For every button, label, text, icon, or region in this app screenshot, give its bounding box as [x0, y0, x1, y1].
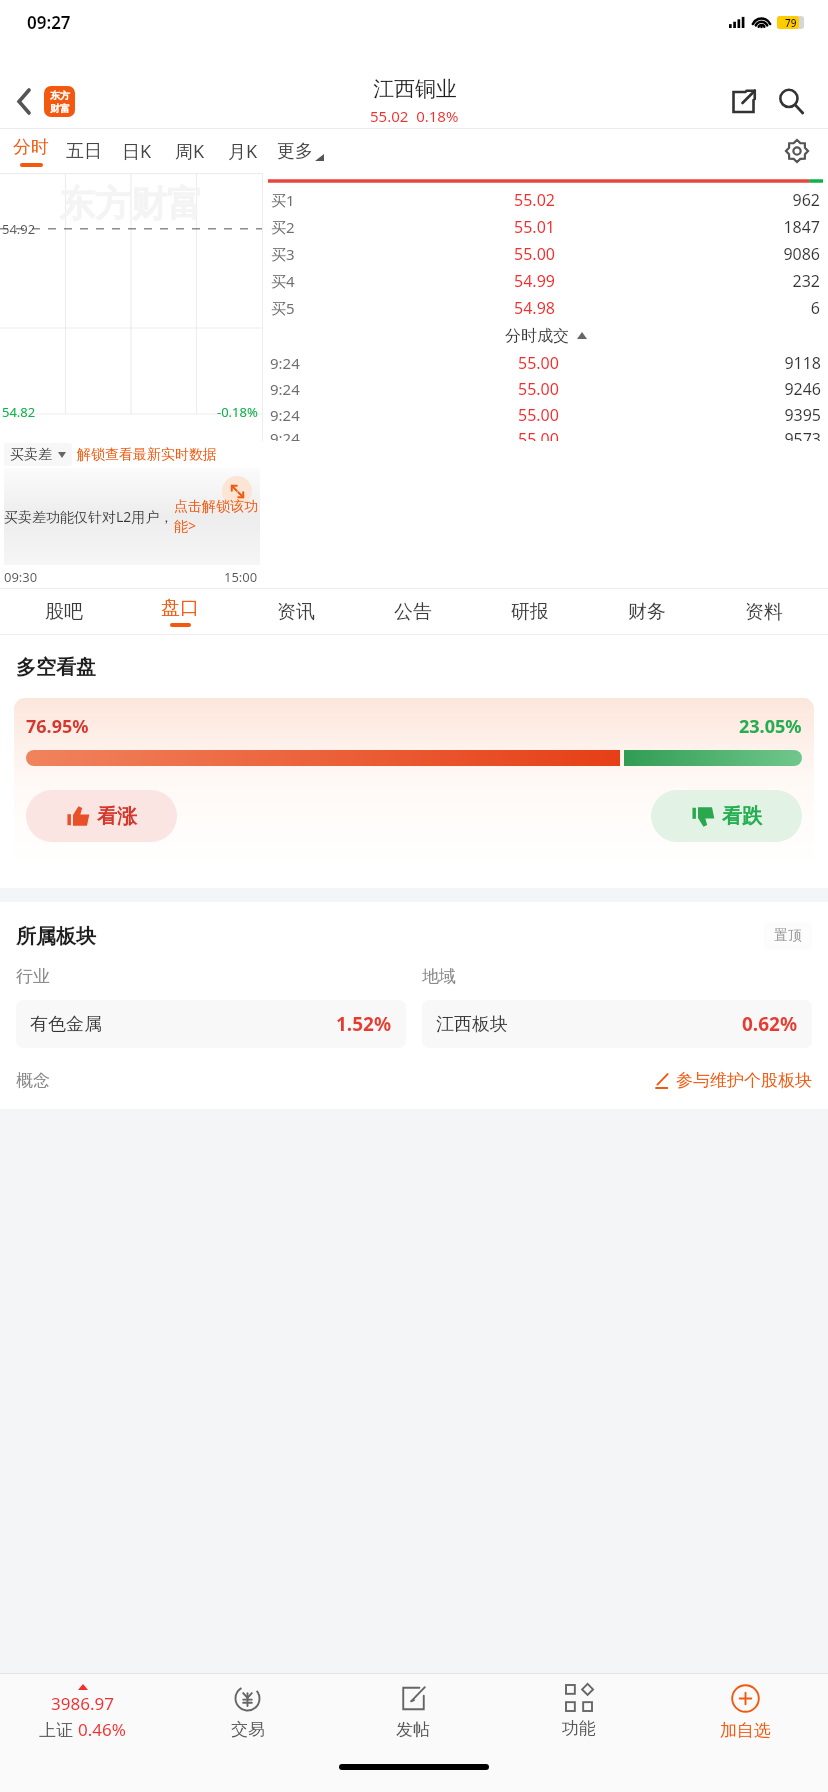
staticText: 五日	[66, 140, 102, 163]
staticText: 买3	[271, 244, 305, 264]
staticText: 看涨	[97, 804, 137, 829]
staticText: 9:24	[270, 379, 310, 399]
staticText: 0.62%	[742, 1011, 798, 1037]
button[interactable]: 周K	[163, 129, 216, 173]
staticText: 功能	[562, 1718, 596, 1739]
button[interactable]: 月K	[216, 129, 269, 173]
staticText: 看跌	[722, 804, 762, 829]
staticText: 东方	[50, 89, 70, 102]
staticText: 江西板块	[436, 1013, 508, 1036]
button[interactable]: 点击解锁该功能>	[174, 498, 260, 535]
staticText: 日K	[122, 139, 152, 164]
staticText: 55.00	[518, 352, 559, 374]
staticText: 多空看盘	[16, 655, 96, 680]
staticText: 财务	[628, 600, 666, 624]
button[interactable]: 买4	[271, 267, 820, 294]
button[interactable]: 财务	[588, 589, 705, 634]
button[interactable]: Fullscreen chart	[222, 476, 252, 506]
staticText: 09:27	[27, 11, 71, 34]
button[interactable]: 9:24	[270, 428, 821, 441]
button[interactable]: 3986.97	[0, 1674, 165, 1750]
staticText: 所属板块	[16, 924, 96, 949]
button[interactable]: 有色金属	[30, 1000, 392, 1048]
staticText: 参与维护个股板块	[676, 1070, 812, 1091]
staticText: 盘口	[161, 596, 199, 620]
button[interactable]: 9:24	[270, 350, 821, 376]
staticText: 23.05%	[739, 714, 802, 739]
staticText: 概念	[16, 1070, 50, 1091]
staticText: 54.92	[2, 220, 36, 238]
staticText: 55.00	[518, 428, 559, 441]
staticText: 分时成交	[505, 326, 569, 346]
staticText: 0.46%	[78, 1718, 126, 1741]
staticText: 买5	[271, 298, 305, 318]
staticText: 买4	[271, 271, 305, 291]
staticText: 3986.97	[51, 1692, 114, 1715]
button[interactable]: 买2	[271, 213, 820, 240]
staticText: 55.00	[305, 243, 764, 265]
staticText: 地域	[422, 966, 812, 987]
staticText: 加自选	[720, 1720, 771, 1741]
staticText: 东方财富	[59, 181, 203, 226]
button[interactable]: 资料	[705, 589, 822, 634]
staticText: 55.02	[305, 189, 764, 211]
button[interactable]: Search	[770, 80, 812, 122]
button[interactable]: 五日	[57, 129, 110, 173]
staticText: 55.00	[518, 378, 559, 400]
staticText: 9118	[767, 352, 821, 374]
button[interactable]: 公告	[354, 589, 471, 634]
button[interactable]: 买3	[271, 240, 820, 267]
button[interactable]: 功能	[496, 1674, 662, 1750]
staticText: 9:24	[270, 353, 310, 373]
staticText: 分时	[13, 136, 49, 159]
staticText: 买2	[271, 217, 305, 237]
staticText: 公告	[394, 600, 432, 624]
staticText: 买卖差	[10, 446, 52, 464]
button[interactable]: Back	[6, 83, 42, 119]
button[interactable]: 江西板块	[436, 1000, 798, 1048]
button[interactable]: 日K	[110, 129, 163, 173]
button[interactable]: Share	[722, 80, 764, 122]
button[interactable]: 研报	[471, 589, 588, 634]
staticText: 1.52%	[336, 1011, 392, 1037]
button[interactable]: 解锁查看最新实时数据	[77, 446, 217, 464]
staticText: 9395	[767, 404, 821, 426]
button[interactable]: 资讯	[238, 589, 354, 634]
staticText: 研报	[511, 600, 549, 624]
staticText: 更多	[277, 140, 313, 163]
button[interactable]: 买1	[271, 186, 820, 213]
staticText: 9:24	[270, 428, 310, 441]
button[interactable]: 交易	[165, 1674, 330, 1750]
staticText: 有色金属	[30, 1013, 102, 1036]
button[interactable]: 买卖差	[10, 443, 66, 466]
button[interactable]: 参与维护个股板块	[654, 1070, 812, 1091]
staticText: 股吧	[45, 600, 83, 624]
button[interactable]: 9:24	[270, 376, 821, 402]
staticText: 财富	[50, 102, 70, 115]
button[interactable]: 股吧	[6, 589, 122, 634]
button[interactable]: 加自选	[662, 1674, 828, 1750]
button[interactable]: 看跌	[651, 790, 802, 842]
button[interactable]: 9:24	[270, 402, 821, 428]
button[interactable]: 发帖	[330, 1674, 496, 1750]
staticText: 上证	[39, 1718, 78, 1741]
staticText: 9:24	[270, 405, 310, 425]
button[interactable]: 置顶	[764, 922, 812, 950]
staticText: 买1	[271, 190, 305, 210]
button[interactable]: 更多	[269, 129, 331, 173]
button[interactable]: 分时	[4, 129, 57, 173]
button[interactable]: 买5	[271, 294, 820, 321]
staticText: 1847	[764, 216, 820, 238]
button[interactable]: 看涨	[26, 790, 177, 842]
staticText: -0.18%	[217, 403, 258, 421]
button[interactable]: 分时成交	[263, 321, 828, 350]
staticText: 资料	[745, 600, 783, 624]
staticText: 76.95%	[26, 714, 89, 739]
staticText: 15:00	[224, 568, 258, 586]
button[interactable]: 盘口	[122, 589, 238, 634]
staticText: 962	[764, 189, 820, 211]
staticText: 买卖差功能仅针对L2用户，	[4, 507, 174, 526]
staticText: 232	[764, 270, 820, 292]
button[interactable]: Settings	[774, 129, 820, 173]
button[interactable]: East Money	[44, 86, 75, 117]
